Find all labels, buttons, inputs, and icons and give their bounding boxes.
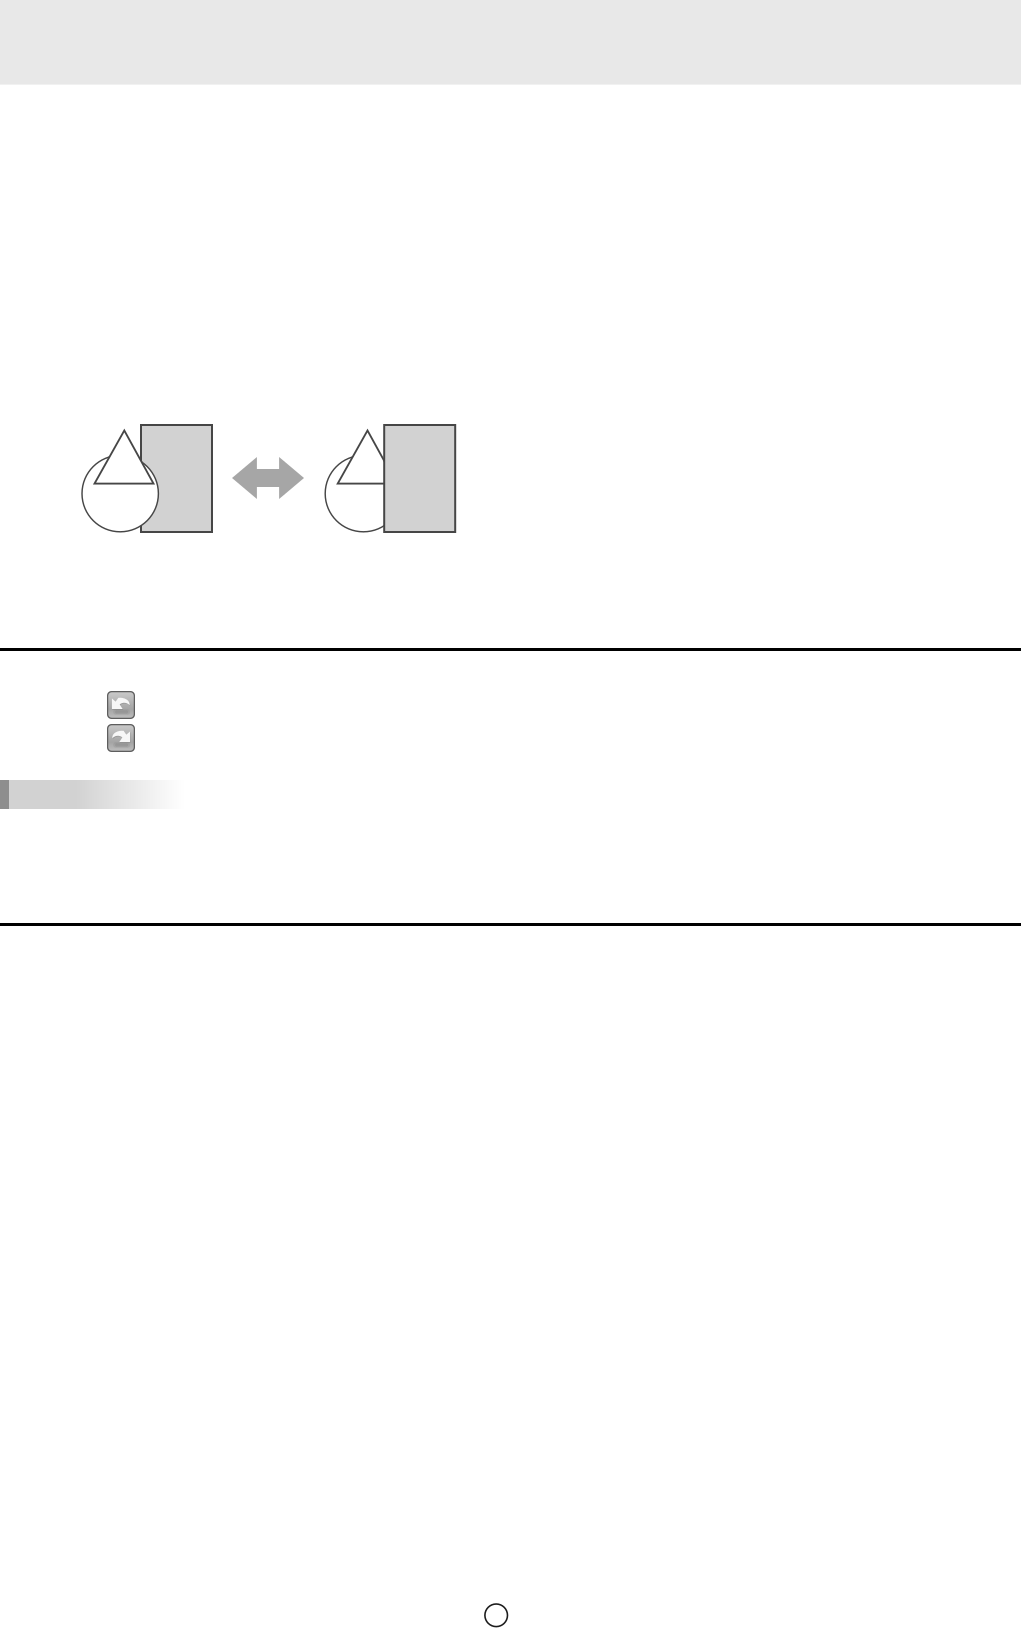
button[interactable]: Undo: [107, 691, 135, 719]
button[interactable]: Redo: [107, 724, 135, 752]
